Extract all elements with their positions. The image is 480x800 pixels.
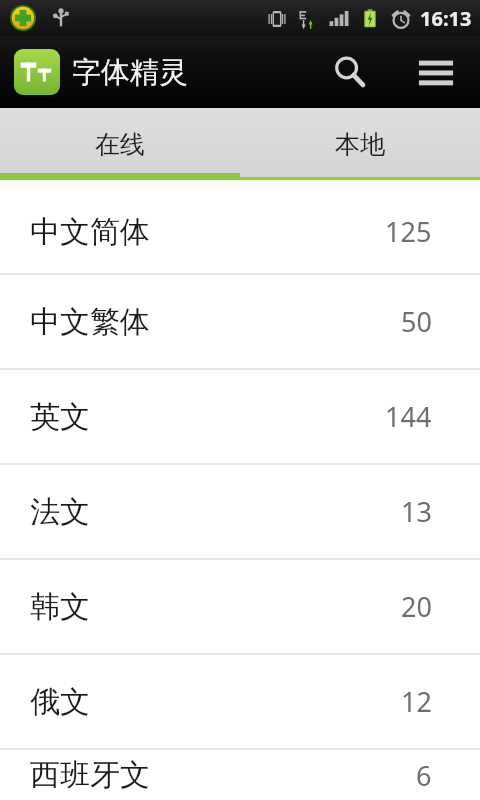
staticText: 中文简体 [30,213,150,251]
button[interactable]: 中文简体 [0,190,480,273]
staticText: 50 [401,303,432,340]
staticText: 在线 [95,129,145,160]
button[interactable]: 法文 [0,465,480,558]
staticText: 法文 [30,493,90,531]
staticText: 20 [401,588,432,625]
staticText: 13 [401,493,432,530]
staticText: 144 [385,398,432,435]
button[interactable]: 英文 [0,370,480,463]
button[interactable]: 本地 [240,108,480,180]
button[interactable]: 中文繁体 [0,275,480,368]
button[interactable]: 西班牙文 [0,750,480,800]
staticText: 125 [385,213,432,250]
button[interactable]: 韩文 [0,560,480,653]
button[interactable]: Search [320,42,380,102]
staticText: 12 [401,683,432,720]
staticText: 韩文 [30,588,90,626]
staticText: 中文繁体 [30,303,150,341]
button[interactable]: 俄文 [0,655,480,748]
staticText: 6 [416,757,432,794]
staticText: 本地 [335,129,385,160]
staticText: 字体精灵 [72,54,188,91]
staticText: 俄文 [30,683,90,721]
staticText: 西班牙文 [30,756,150,794]
staticText: 16:13 [420,5,472,32]
staticText: 英文 [30,398,90,436]
button[interactable]: Menu [406,42,466,102]
button[interactable]: 在线 [0,108,240,180]
